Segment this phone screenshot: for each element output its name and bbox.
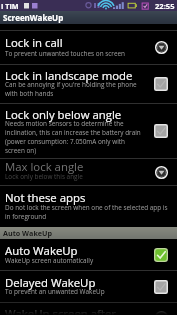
button[interactable]: Lock in landscape mode: [0, 65, 177, 103]
staticText: Auto WakeUp: [3, 228, 53, 238]
staticText: WakeUp screen automatically: [5, 256, 94, 265]
staticText: Can be annoying if you're holding the ph…: [5, 80, 141, 98]
staticText: Lock only below this angle: [5, 172, 83, 181]
staticText: Not these apps: [5, 190, 86, 206]
button[interactable]: Not these apps: [0, 186, 177, 227]
staticText: ScreenWakeUp: [3, 12, 64, 23]
staticText: WakeUp screen after: [5, 306, 117, 315]
staticText: Lock in call: [5, 35, 63, 51]
staticText: Needs motion sensors to determine the in…: [5, 119, 141, 155]
staticText: Do not lock the screen when one of the s…: [5, 203, 168, 221]
staticText: 22:55: [155, 1, 175, 11]
button[interactable]: Auto WakeUp: [0, 239, 177, 270]
staticText: Lock in landscape mode: [5, 68, 133, 84]
staticText: To prevent an unwanted WakeUp: [5, 287, 105, 296]
staticText: To prevent unwanted touches on screen: [5, 49, 126, 58]
button[interactable]: Max lock angle: [0, 159, 177, 185]
button[interactable]: WakeUp screen after: [0, 303, 177, 315]
button[interactable]: Lock in call: [0, 31, 177, 64]
staticText: Delayed WakeUp: [5, 275, 96, 291]
staticText: Auto WakeUp: [5, 243, 78, 259]
staticText: Lock only below angle: [5, 107, 122, 123]
staticText: Max lock angle: [5, 159, 84, 175]
staticText: I TIM: [1, 1, 19, 11]
button[interactable]: Lock only below angle: [0, 104, 177, 158]
button[interactable]: Delayed WakeUp: [0, 271, 177, 302]
